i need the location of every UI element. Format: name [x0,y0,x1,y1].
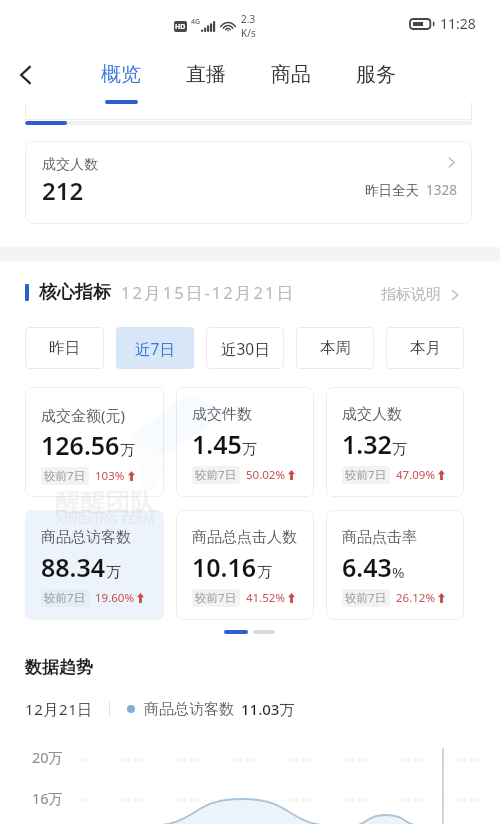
staticText: 1328 [426,181,457,199]
staticText: 万 [242,440,257,459]
staticText: HD [175,22,186,32]
staticText: 指标说明 [381,285,441,304]
staticText: 成交人数 [42,156,98,174]
staticText: 商品 [271,62,311,87]
button[interactable]: 本月 [386,327,464,369]
button[interactable]: 商品总访客数 [25,510,164,620]
button[interactable]: 直播 [171,62,241,104]
button[interactable]: Back [5,54,47,96]
staticText: % [392,562,405,582]
staticText: 较前7日 [345,590,387,606]
staticText: 10.16 [192,550,257,584]
staticText: 11.03万 [241,699,295,719]
staticText: 26.12% [396,590,435,606]
staticText: 万 [106,563,121,582]
staticText: 直播 [186,62,226,87]
staticText: 万 [392,440,407,459]
staticText: 万 [120,441,135,460]
staticText: 近30日 [221,338,270,359]
staticText: 较前7日 [44,468,86,484]
staticText: 16万 [32,788,64,808]
staticText: 4G [191,17,201,27]
staticText: 12月15日-12月21日 [121,281,296,304]
staticText: 服务 [356,62,396,87]
staticText: 成交件数 [192,405,252,424]
staticText: 1.32 [342,427,392,461]
staticText: 昨日全天 [365,182,419,199]
button[interactable]: 商品 [256,62,326,104]
staticText: 成交人数 [342,405,402,424]
staticText: 较前7日 [44,590,86,606]
staticText: XINGXING TEAM [56,511,155,528]
staticText: 成交金额(元) [41,405,126,425]
staticText: 近7日 [135,338,175,359]
staticText: 商品总访客数 [144,700,234,719]
staticText: 万 [257,563,272,582]
staticText: 88.34 [41,550,106,584]
staticText: 醒醒团队 [55,487,155,518]
button[interactable]: 昨日 [25,327,104,369]
staticText: 2.3 [241,12,256,26]
staticText: 1.45 [192,427,242,461]
staticText: 12月21日 [25,699,93,719]
staticText: 较前7日 [195,467,237,483]
staticText: 商品点击率 [342,528,417,547]
button[interactable]: 成交金额(元) [25,387,164,497]
staticText: K/s [241,26,256,40]
staticText: 昨日 [49,338,80,358]
button[interactable]: 成交人数 [25,141,472,224]
staticText: 103% [95,468,125,484]
button[interactable]: 成交件数 [176,387,314,497]
button[interactable]: 商品总点击人数 [176,510,314,620]
staticText: 50.02% [246,467,285,483]
staticText: 126.56 [41,428,120,462]
button[interactable]: 近7日 [116,327,194,369]
button[interactable]: 服务 [341,62,411,104]
button[interactable]: 商品点击率 [326,510,464,620]
staticText: 212 [42,174,84,207]
staticText: 较前7日 [345,467,387,483]
staticText: 较前7日 [195,590,237,606]
staticText: 20万 [32,747,64,767]
button[interactable]: 本周 [296,327,374,369]
staticText: 商品总点击人数 [192,528,297,547]
staticText: 11:28 [440,14,476,33]
staticText: 41.52% [246,590,285,606]
staticText: 商品总访客数 [41,528,131,547]
button[interactable]: 近30日 [206,327,284,369]
staticText: 19.60% [95,590,134,606]
button[interactable]: 成交人数 [326,387,464,497]
button[interactable]: 指标说明 [381,285,461,304]
staticText: 6.43 [342,550,392,584]
staticText: 本周 [320,338,351,358]
staticText: 核心指标 [39,281,111,304]
staticText: 概览 [101,62,141,87]
staticText: 数据趋势 [25,657,93,678]
staticText: 本月 [410,338,441,358]
staticText: 47.09% [396,467,435,483]
button[interactable]: 概览 [86,62,156,104]
